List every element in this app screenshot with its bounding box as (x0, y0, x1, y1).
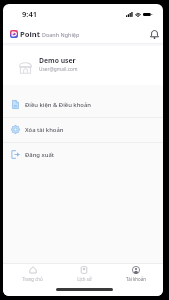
staticText: Trang chủ (22, 276, 43, 282)
button[interactable]: Notifications (147, 27, 161, 41)
button[interactable]: Điều kiện & Điều khoản (3, 92, 163, 117)
staticText: 9:41 (22, 9, 38, 19)
button[interactable]: Lịch sử (58, 264, 110, 284)
staticText: Đăng xuất (25, 151, 55, 159)
button[interactable]: Trang chủ (7, 264, 58, 284)
staticText: Doanh Nghiệp (42, 31, 80, 38)
staticText: Lịch sử (77, 276, 92, 282)
staticText: Demo user (39, 56, 76, 65)
staticText: User@gmail.com (39, 66, 78, 73)
staticText: Point (20, 29, 40, 39)
button[interactable]: Demo user (3, 52, 163, 78)
button[interactable]: Tài khoản (110, 264, 162, 284)
staticText: Điều kiện & Điều khoản (25, 101, 92, 109)
staticText: Xóa tài khoản (25, 126, 64, 134)
staticText: Tài khoản (126, 276, 146, 282)
button[interactable]: Xóa tài khoản (3, 117, 163, 142)
button[interactable]: Đăng xuất (3, 142, 163, 167)
